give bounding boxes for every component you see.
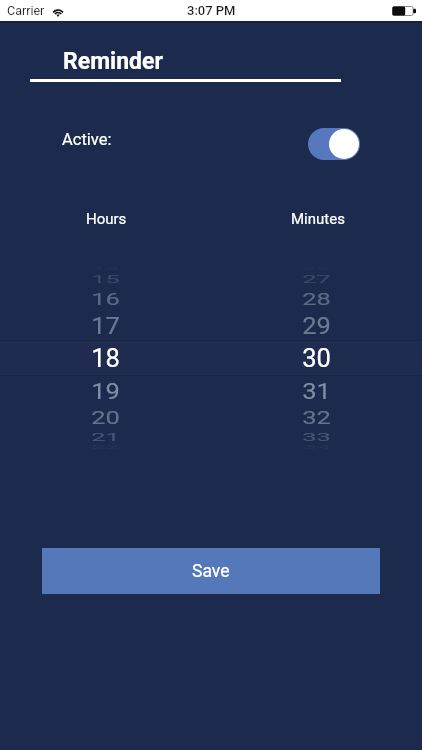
button[interactable]: 17 [60,306,150,346]
staticText: 18 [91,343,120,373]
staticText: Save [192,561,230,582]
other: Battery [392,6,416,16]
staticText: 3:07 PM [187,3,236,18]
button[interactable]: 33 [271,427,361,447]
other: Wi-Fi [51,6,65,16]
button[interactable]: 29 [271,306,361,346]
button[interactable]: 32 [271,401,361,433]
button[interactable]: Save [42,548,380,594]
staticText: Hours [86,210,127,228]
staticText: 31 [302,377,331,404]
staticText: 19 [91,377,120,404]
button[interactable]: 21 [60,427,150,447]
staticText: Carrier [7,3,45,18]
staticText: Active: [62,130,112,149]
button[interactable]: 19 [60,371,150,411]
staticText: Reminder [63,48,163,75]
staticText: Minutes [291,210,345,228]
staticText: 28 [302,289,331,308]
staticText: 17 [91,312,120,340]
staticText: 33 [302,430,331,444]
button[interactable]: 16 [60,285,150,313]
staticText: 32 [302,406,331,428]
staticText: 15 [91,273,120,285]
staticText: 29 [302,312,331,340]
button[interactable]: 15 [60,270,150,288]
staticText: 21 [91,430,120,444]
staticText: 27 [302,273,331,285]
button[interactable]: 28 [271,285,361,313]
button[interactable]: 27 [271,270,361,288]
button[interactable]: 20 [60,401,150,433]
staticText: 30 [302,343,331,373]
button[interactable]: Active toggle [308,128,360,160]
button[interactable]: 18 [60,336,150,380]
staticText: 20 [91,406,120,428]
button[interactable]: 30 [271,336,361,380]
staticText: 16 [91,289,120,308]
button[interactable]: 31 [271,371,361,411]
